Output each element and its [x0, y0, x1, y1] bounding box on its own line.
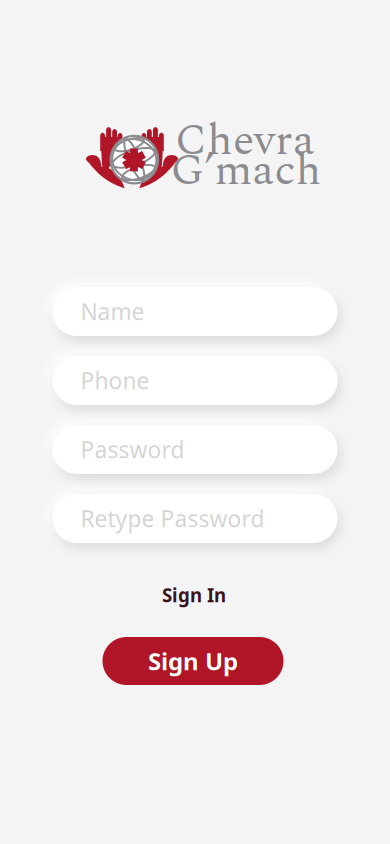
staticText: Sign Up: [148, 645, 238, 677]
staticText: G’mach: [170, 137, 321, 204]
button[interactable]: Sign Up: [102, 637, 283, 685]
button[interactable]: Sign In: [150, 576, 238, 614]
staticText: Phone: [80, 365, 149, 395]
staticText: Retype Password: [80, 503, 264, 533]
staticText: Name: [80, 296, 144, 326]
staticText: Chevra: [175, 107, 315, 174]
staticText: Sign In: [162, 583, 226, 607]
staticText: Password: [80, 434, 184, 464]
